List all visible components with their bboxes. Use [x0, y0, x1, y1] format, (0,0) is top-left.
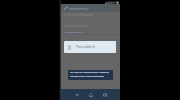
button[interactable]: integrbwrry: [61, 4, 120, 12]
staticText: integrbwrry: [69, 6, 89, 11]
staticText: We need to download and configure it by …: [70, 71, 111, 74]
button[interactable]: Recents: [100, 90, 109, 99]
button[interactable]: We need to download and configure it by …: [68, 70, 113, 80]
button[interactable]: cpt bptkb ptbi: [65, 30, 82, 33]
staticText: Tryit wpt bdhwkpky: [64, 13, 94, 17]
staticText: handling your media addresses: [70, 75, 104, 78]
button[interactable]: Phus etdekrth .: [64, 41, 116, 53]
staticText: cpt bptkb ptbi: [65, 30, 82, 33]
staticText: Pbd wt dkyt bth: [64, 24, 88, 28]
button[interactable]: Pbd wt dkyt bth: [61, 24, 120, 28]
button[interactable]: Back: [72, 90, 81, 99]
staticText: Phus etdekrth .: [76, 45, 96, 49]
button[interactable]: Tryit wpt bdhwkpky: [61, 13, 120, 20]
button[interactable]: Home: [86, 90, 95, 99]
